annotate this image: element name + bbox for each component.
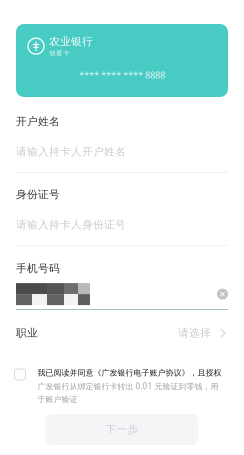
staticText: 身份证号 — [16, 188, 60, 201]
staticText: 于账户验证 — [37, 394, 77, 404]
staticText: 广发银行从绑定银行卡转出 0.01 元验证到零钱，用 — [37, 381, 218, 391]
staticText: 职业 — [16, 326, 38, 339]
staticText: **** **** **** 8888 — [79, 69, 165, 81]
staticText: 请输入持卡人开户姓名 — [16, 145, 126, 158]
staticText: 开户姓名 — [16, 115, 60, 128]
button[interactable]: 清除 — [217, 289, 228, 300]
button[interactable]: 我已阅读并同意《广发银行电子账户协议》，且授权 — [14, 368, 229, 404]
staticText: 手机号码 — [16, 262, 60, 275]
staticText: 下一步 — [105, 423, 138, 436]
staticText: 农业银行 — [49, 35, 93, 48]
staticText: 请输入持卡人身份证号 — [16, 218, 126, 231]
staticText: 请选择 — [178, 326, 211, 339]
staticText: 储蓄卡 — [49, 49, 70, 57]
button[interactable]: 下一步 — [45, 414, 198, 445]
button[interactable]: 职业 — [16, 327, 228, 339]
staticText: 我已阅读并同意《广发银行电子账户协议》，且授权 — [37, 368, 221, 378]
